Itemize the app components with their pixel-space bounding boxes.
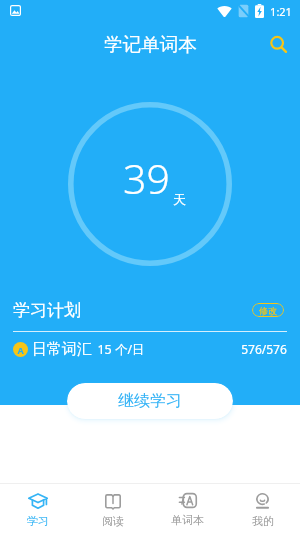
staticText: 1:21	[270, 4, 292, 19]
button[interactable]: 修改	[252, 303, 284, 317]
staticText: 学记单词本	[104, 33, 197, 56]
staticText: 我的	[252, 514, 274, 528]
staticText: 阅读	[102, 514, 124, 528]
staticText: 学习	[27, 514, 49, 528]
button[interactable]: 单词本	[150, 484, 225, 527]
button[interactable]: 学习	[0, 484, 75, 528]
button[interactable]: 继续学习	[67, 383, 233, 419]
staticText: 学习计划	[13, 300, 81, 321]
staticText: 39	[123, 150, 170, 206]
staticText: 单词本	[171, 513, 204, 527]
staticText: 修改	[259, 305, 277, 316]
button[interactable]: Search	[260, 27, 294, 61]
staticText: 576/576	[241, 341, 287, 357]
button[interactable]: A	[0, 340, 300, 358]
button[interactable]: 阅读	[75, 484, 150, 528]
staticText: 15 个/日	[97, 341, 145, 358]
staticText: 继续学习	[118, 391, 182, 411]
staticText: 日常词汇	[32, 340, 92, 358]
staticText: A	[17, 344, 24, 356]
button[interactable]: 我的	[225, 484, 300, 528]
staticText: 天	[173, 191, 186, 207]
